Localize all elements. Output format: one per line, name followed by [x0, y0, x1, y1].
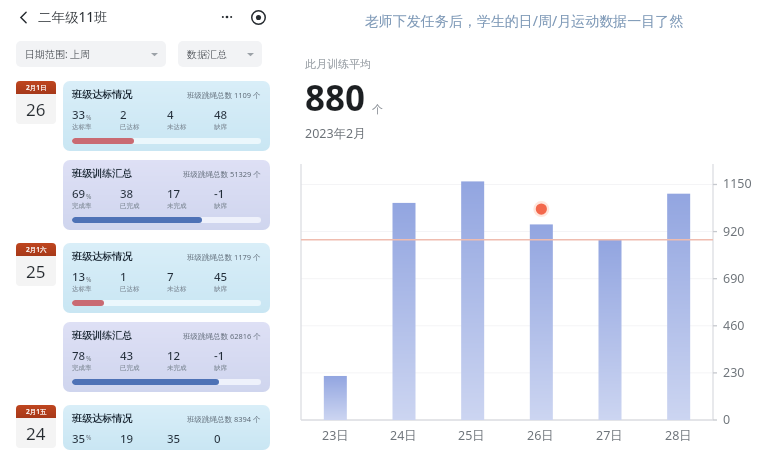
- staticText: 缺席: [214, 202, 227, 210]
- staticText: 达标率: [72, 285, 92, 293]
- staticText: 23日: [322, 427, 349, 444]
- staticText: 1150: [723, 175, 752, 192]
- staticText: 0: [723, 411, 731, 428]
- staticText: 28日: [665, 427, 692, 444]
- button[interactable]: 班级达标情况: [63, 405, 270, 450]
- staticText: 2023年2月: [305, 125, 366, 142]
- button[interactable]: 班级训练汇总: [63, 160, 270, 230]
- staticText: 17: [167, 186, 181, 202]
- button[interactable]: Scan target: [246, 5, 270, 29]
- staticText: 880: [305, 74, 366, 122]
- staticText: 缺席: [214, 123, 227, 131]
- staticText: 缺席: [214, 285, 227, 293]
- staticText: 2月1日: [26, 83, 47, 92]
- staticText: 日期范围: 上周: [25, 47, 91, 61]
- staticText: %: [86, 433, 92, 442]
- staticText: 老师下发任务后，学生的日/周/月运动数据一目了然: [287, 11, 761, 30]
- staticText: 班级跳绳总数 51329 个: [183, 169, 261, 179]
- staticText: 班级达标情况: [72, 412, 132, 425]
- staticText: 24: [26, 422, 46, 445]
- staticText: 完成率: [72, 364, 92, 372]
- staticText: 数据汇总: [187, 48, 227, 61]
- staticText: 230: [723, 364, 745, 381]
- staticText: 19: [120, 431, 134, 443]
- staticText: 班级跳绳总数 62816 个: [183, 331, 261, 341]
- button[interactable]: 2月1六: [16, 243, 56, 286]
- staticText: 班级达标情况: [72, 250, 132, 263]
- staticText: 个: [372, 102, 383, 116]
- button[interactable]: 班级达标情况: [63, 243, 270, 313]
- staticText: 4: [167, 107, 174, 123]
- staticText: 48: [214, 107, 228, 123]
- staticText: 达标率: [72, 123, 92, 131]
- staticText: 班级训练汇总: [72, 329, 132, 342]
- staticText: -1: [214, 348, 225, 364]
- staticText: 未完成: [167, 202, 187, 210]
- staticText: 完成率: [72, 202, 92, 210]
- button[interactable]: 班级训练汇总: [63, 322, 270, 392]
- staticText: 班级跳绳总数 1109 个: [187, 90, 261, 100]
- staticText: 已完成: [120, 364, 140, 372]
- staticText: %: [86, 113, 92, 122]
- staticText: 13: [72, 269, 86, 285]
- staticText: -1: [214, 186, 225, 202]
- staticText: 0: [214, 431, 221, 443]
- staticText: 2月1六: [26, 245, 47, 254]
- staticText: 69: [72, 186, 86, 202]
- staticText: 班级训练汇总: [72, 167, 132, 180]
- staticText: 43: [120, 348, 134, 364]
- staticText: 班级达标情况: [72, 88, 132, 101]
- staticText: 920: [723, 223, 745, 240]
- staticText: 未达标: [167, 123, 187, 131]
- staticText: 78: [72, 348, 86, 364]
- staticText: 27日: [596, 427, 623, 444]
- button[interactable]: 2月1日: [16, 81, 56, 124]
- staticText: 未完成: [167, 364, 187, 372]
- staticText: 45: [214, 269, 228, 285]
- staticText: 7: [167, 269, 174, 285]
- staticText: 690: [723, 270, 745, 287]
- staticText: %: [86, 275, 92, 284]
- staticText: 2月1五: [26, 407, 47, 416]
- staticText: 已完成: [120, 202, 140, 210]
- staticText: 25日: [458, 427, 485, 444]
- staticText: 班级跳绳总数 1179 个: [187, 252, 261, 262]
- button[interactable]: 2月1五: [16, 405, 56, 448]
- staticText: %: [86, 354, 92, 363]
- staticText: 2: [120, 107, 127, 123]
- staticText: 1: [120, 269, 127, 285]
- button[interactable]: 日期范围: 上周: [16, 41, 166, 67]
- staticText: 33: [72, 107, 86, 123]
- staticText: 38: [120, 186, 134, 202]
- staticText: 26日: [527, 427, 554, 444]
- button[interactable]: 数据汇总: [178, 41, 262, 67]
- button[interactable]: Back: [13, 7, 33, 27]
- staticText: 此月训练平均: [305, 57, 371, 71]
- staticText: 35: [167, 431, 181, 443]
- staticText: 已达标: [120, 123, 140, 131]
- staticText: 24日: [390, 427, 417, 444]
- staticText: 班级跳绳总数 8394 个: [187, 414, 261, 424]
- staticText: 25: [26, 260, 46, 283]
- staticText: 二年级11班: [38, 8, 108, 26]
- staticText: 460: [723, 317, 745, 334]
- staticText: 12: [167, 348, 181, 364]
- staticText: 缺席: [214, 364, 227, 372]
- staticText: %: [86, 192, 92, 201]
- button[interactable]: More options: [215, 5, 239, 29]
- staticText: 未达标: [167, 285, 187, 293]
- staticText: 35: [72, 431, 86, 443]
- staticText: 已达标: [120, 285, 140, 293]
- staticText: 26: [26, 98, 46, 121]
- button[interactable]: 班级达标情况: [63, 81, 270, 151]
